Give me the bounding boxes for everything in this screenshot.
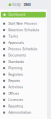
button[interactable]: Registers	[0, 71, 47, 78]
button[interactable]: Approvals	[0, 40, 47, 46]
button[interactable]: Licences	[0, 97, 47, 103]
button[interactable]: Dashboard	[0, 12, 47, 17]
button[interactable]: Administration	[0, 109, 47, 116]
button[interactable]: Planning	[0, 65, 47, 71]
staticText: iscay	[12, 2, 21, 7]
button[interactable]: Tasks	[0, 33, 47, 39]
staticText: Registers	[8, 72, 23, 76]
button[interactable]: Activities	[0, 84, 47, 90]
staticText: Documents	[8, 53, 26, 57]
staticText: Dashboard	[8, 13, 25, 17]
staticText: Reporting	[8, 104, 23, 108]
button[interactable]: Documents	[0, 52, 47, 59]
staticText: Process Schedule	[8, 47, 37, 51]
staticText: Standards	[8, 60, 24, 64]
staticText: Retention Schedule	[8, 28, 39, 32]
staticText: Activities	[8, 85, 23, 89]
button[interactable]: Reports	[0, 78, 47, 84]
button[interactable]: Process Schedule	[0, 46, 47, 52]
button[interactable]: Retention Schedule	[0, 27, 47, 33]
staticText: Start New Process	[8, 22, 37, 26]
staticText: Approvals	[8, 41, 24, 45]
button[interactable]: Offices	[0, 90, 47, 97]
staticText: Tasks	[8, 34, 18, 38]
staticText: DMS	[24, 3, 31, 7]
staticText: Licences	[8, 98, 23, 102]
staticText: Reports	[8, 79, 20, 83]
staticText: Planning	[8, 66, 22, 70]
button[interactable]: Standards	[0, 59, 47, 65]
button[interactable]: Reporting	[0, 103, 47, 109]
staticText: Administration	[8, 111, 31, 114]
button[interactable]: Start New Process	[0, 20, 47, 27]
staticText: Offices	[8, 92, 19, 95]
button[interactable]: iscay DMS home	[0, 0, 47, 9]
